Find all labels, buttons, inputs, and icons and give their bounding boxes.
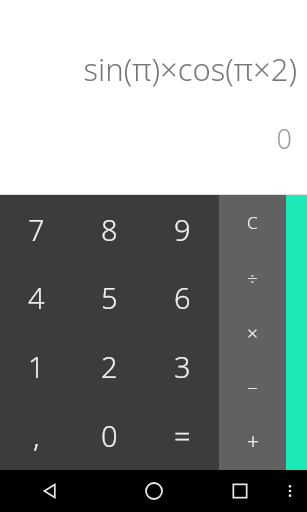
staticText: 3 bbox=[174, 347, 191, 386]
staticText: 9 bbox=[174, 210, 191, 249]
staticText: × bbox=[247, 320, 258, 346]
button[interactable]: C bbox=[219, 195, 286, 250]
button[interactable]: 0 bbox=[73, 401, 146, 470]
button[interactable]: Recent apps bbox=[200, 470, 280, 512]
staticText: 7 bbox=[28, 210, 45, 249]
button[interactable]: × bbox=[219, 305, 286, 360]
button[interactable]: Back bbox=[0, 470, 100, 512]
button[interactable]: − bbox=[219, 360, 286, 415]
staticText: ÷ bbox=[247, 265, 258, 291]
staticText: 0 bbox=[276, 120, 292, 157]
staticText: 1 bbox=[28, 347, 45, 386]
staticText: 0 bbox=[101, 416, 118, 455]
staticText: 8 bbox=[101, 210, 118, 249]
staticText: 4 bbox=[28, 278, 45, 317]
button[interactable]: 1 bbox=[0, 332, 73, 401]
button[interactable]: 9 bbox=[146, 195, 219, 263]
button[interactable]: 8 bbox=[73, 195, 146, 263]
button[interactable]: Home bbox=[109, 470, 199, 512]
staticText: sin(π)×cos(π×2) bbox=[83, 48, 297, 90]
staticText: 6 bbox=[174, 278, 191, 317]
staticText: = bbox=[174, 416, 191, 455]
staticText: + bbox=[247, 428, 259, 457]
staticText: − bbox=[247, 375, 258, 401]
staticText: 5 bbox=[101, 278, 118, 317]
staticText: 2 bbox=[101, 347, 118, 386]
button[interactable]: 6 bbox=[146, 263, 219, 332]
button[interactable]: 2 bbox=[73, 332, 146, 401]
button[interactable]: + bbox=[219, 415, 286, 470]
staticText: , bbox=[33, 415, 40, 456]
button[interactable]: 3 bbox=[146, 332, 219, 401]
button[interactable]: , bbox=[0, 401, 73, 470]
button[interactable]: 7 bbox=[0, 195, 73, 263]
button[interactable]: 4 bbox=[0, 263, 73, 332]
button[interactable]: ÷ bbox=[219, 250, 286, 305]
button[interactable]: = bbox=[146, 401, 219, 470]
button[interactable]: 5 bbox=[73, 263, 146, 332]
button[interactable]: More options bbox=[273, 470, 307, 512]
staticText: C bbox=[247, 211, 258, 234]
